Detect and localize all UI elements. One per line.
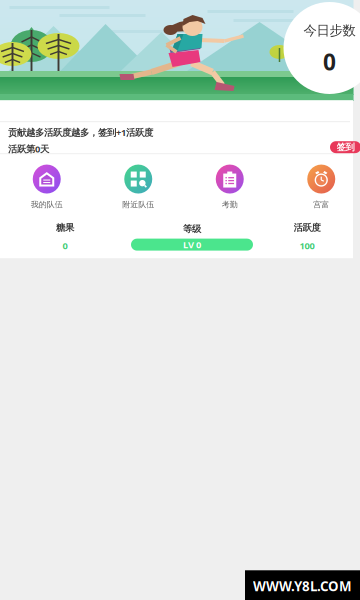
staticText: 附近队伍 <box>122 200 154 209</box>
staticText: 考勤 <box>222 200 238 209</box>
staticText: 活跃第0天 <box>8 143 49 155</box>
button[interactable]: 我的队伍 <box>1 164 92 210</box>
staticText: 等级 <box>183 223 201 235</box>
staticText: 100 <box>299 239 314 252</box>
button[interactable]: 附近队伍 <box>92 164 184 210</box>
staticText: 活跃度 <box>293 222 320 233</box>
staticText: 糖果 <box>56 222 74 233</box>
staticText: 我的队伍 <box>31 200 63 209</box>
staticText: 0 <box>323 47 336 77</box>
button[interactable]: 考勤 <box>184 164 275 210</box>
staticText: 签到 <box>336 141 354 153</box>
button[interactable]: 签到 <box>330 141 360 153</box>
staticText: 今日步数 <box>303 22 355 39</box>
staticText: 0 <box>62 239 67 252</box>
staticText: LV 0 <box>183 238 201 251</box>
staticText: 贡献越多活跃度越多，签到+1活跃度 <box>8 126 153 139</box>
staticText: 宫富 <box>313 200 329 209</box>
staticText: WWW.Y8L.COM <box>253 577 352 595</box>
button[interactable]: 宫富 <box>275 164 360 210</box>
